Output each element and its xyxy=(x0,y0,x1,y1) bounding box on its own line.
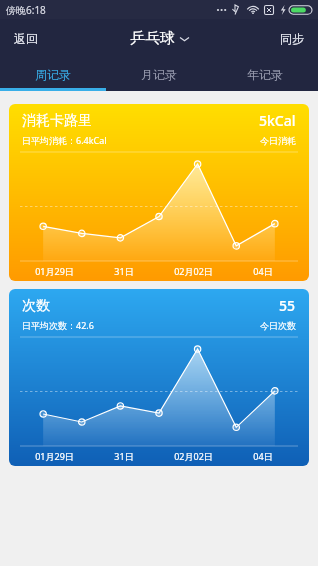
staticText: 04日 xyxy=(253,450,273,462)
staticText: 55 xyxy=(279,296,296,315)
staticText: 02月02日 xyxy=(174,265,213,277)
staticText: 01月29日 xyxy=(35,265,74,277)
button[interactable]: 同步 xyxy=(266,19,318,58)
staticText: 消耗卡路里 xyxy=(22,112,92,130)
staticText: 年记录 xyxy=(247,67,283,82)
staticText: 月记录 xyxy=(141,67,177,82)
staticText: 31日 xyxy=(114,450,134,462)
button[interactable]: 月记录 xyxy=(106,58,212,91)
button[interactable]: 返回 xyxy=(0,19,52,58)
button[interactable]: 次数 xyxy=(9,289,309,466)
staticText: 5kCal xyxy=(259,111,296,130)
button[interactable]: 年记录 xyxy=(212,58,318,91)
staticText: 傍晚6:18 xyxy=(6,3,46,17)
staticText: 同步 xyxy=(280,31,304,46)
staticText: 01月29日 xyxy=(35,450,74,462)
button[interactable]: 消耗卡路里 xyxy=(9,104,309,281)
staticText: 02月02日 xyxy=(174,450,213,462)
staticText: 日平均消耗：6.4kCal xyxy=(22,134,107,146)
staticText: 乒乓球 xyxy=(130,29,175,48)
staticText: 今日次数 xyxy=(260,320,296,331)
staticText: 04日 xyxy=(253,265,273,277)
staticText: 31日 xyxy=(114,265,134,277)
button[interactable]: 乒乓球 xyxy=(122,25,197,52)
staticText: 返回 xyxy=(14,31,38,46)
staticText: 日平均次数：42.6 xyxy=(22,319,94,331)
staticText: 周记录 xyxy=(35,67,71,82)
staticText: 次数 xyxy=(22,297,50,315)
staticText: 今日消耗 xyxy=(260,135,296,146)
button[interactable]: 周记录 xyxy=(0,58,106,91)
